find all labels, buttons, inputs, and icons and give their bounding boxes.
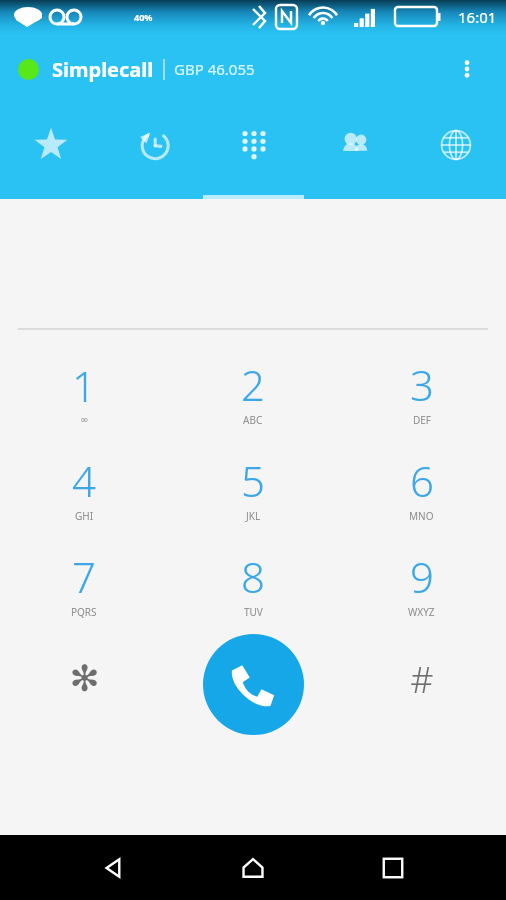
button[interactable]: More options [446, 48, 488, 90]
button[interactable]: ✻ [0, 631, 168, 727]
button[interactable]: 3 [337, 343, 506, 439]
staticText: 9 [410, 548, 434, 605]
staticText: 0 [241, 642, 265, 699]
staticText: MNO [409, 509, 434, 523]
button[interactable]: Call [203, 634, 304, 735]
button[interactable]: Call history [102, 104, 203, 199]
staticText: 4 [72, 452, 96, 509]
staticText: ABC [243, 413, 263, 427]
staticText: 40% [134, 11, 153, 23]
staticText: + [249, 699, 257, 717]
button[interactable]: Dialpad [203, 104, 304, 199]
staticText: 16:01 [458, 7, 497, 27]
staticText: GHI [75, 509, 94, 523]
button[interactable]: International [405, 104, 506, 199]
staticText: # [410, 655, 434, 704]
staticText: PQRS [71, 605, 97, 619]
button[interactable]: 5 [168, 439, 337, 535]
staticText: 2 [241, 356, 265, 413]
staticText: 5 [241, 452, 265, 509]
staticText: 1 [72, 357, 96, 414]
button[interactable]: Contacts [304, 104, 405, 199]
button[interactable]: Recents [367, 842, 419, 894]
button[interactable]: 7 [0, 535, 168, 631]
staticText: TUV [244, 605, 263, 619]
staticText: 8 [241, 548, 265, 605]
button[interactable]: 1 [0, 343, 168, 439]
staticText: Simplecall [52, 56, 154, 83]
staticText: JKL [246, 509, 261, 523]
button[interactable]: 6 [337, 439, 506, 535]
button[interactable]: Back [88, 842, 140, 894]
button[interactable]: 0 [168, 631, 337, 727]
staticText: 7 [72, 548, 96, 605]
staticText: GBP 46.055 [174, 59, 255, 79]
button[interactable]: 4 [0, 439, 168, 535]
staticText: ∞ [80, 414, 89, 426]
button[interactable]: 9 [337, 535, 506, 631]
staticText: 6 [410, 452, 434, 509]
staticText: ✻ [69, 658, 100, 700]
button[interactable]: # [337, 631, 506, 727]
staticText: 3 [410, 356, 434, 413]
button[interactable]: 2 [168, 343, 337, 439]
staticText: WXYZ [408, 605, 435, 619]
button[interactable]: Home [227, 842, 279, 894]
button[interactable]: 8 [168, 535, 337, 631]
staticText: DEF [413, 413, 432, 427]
button[interactable]: Favorites [0, 104, 102, 199]
